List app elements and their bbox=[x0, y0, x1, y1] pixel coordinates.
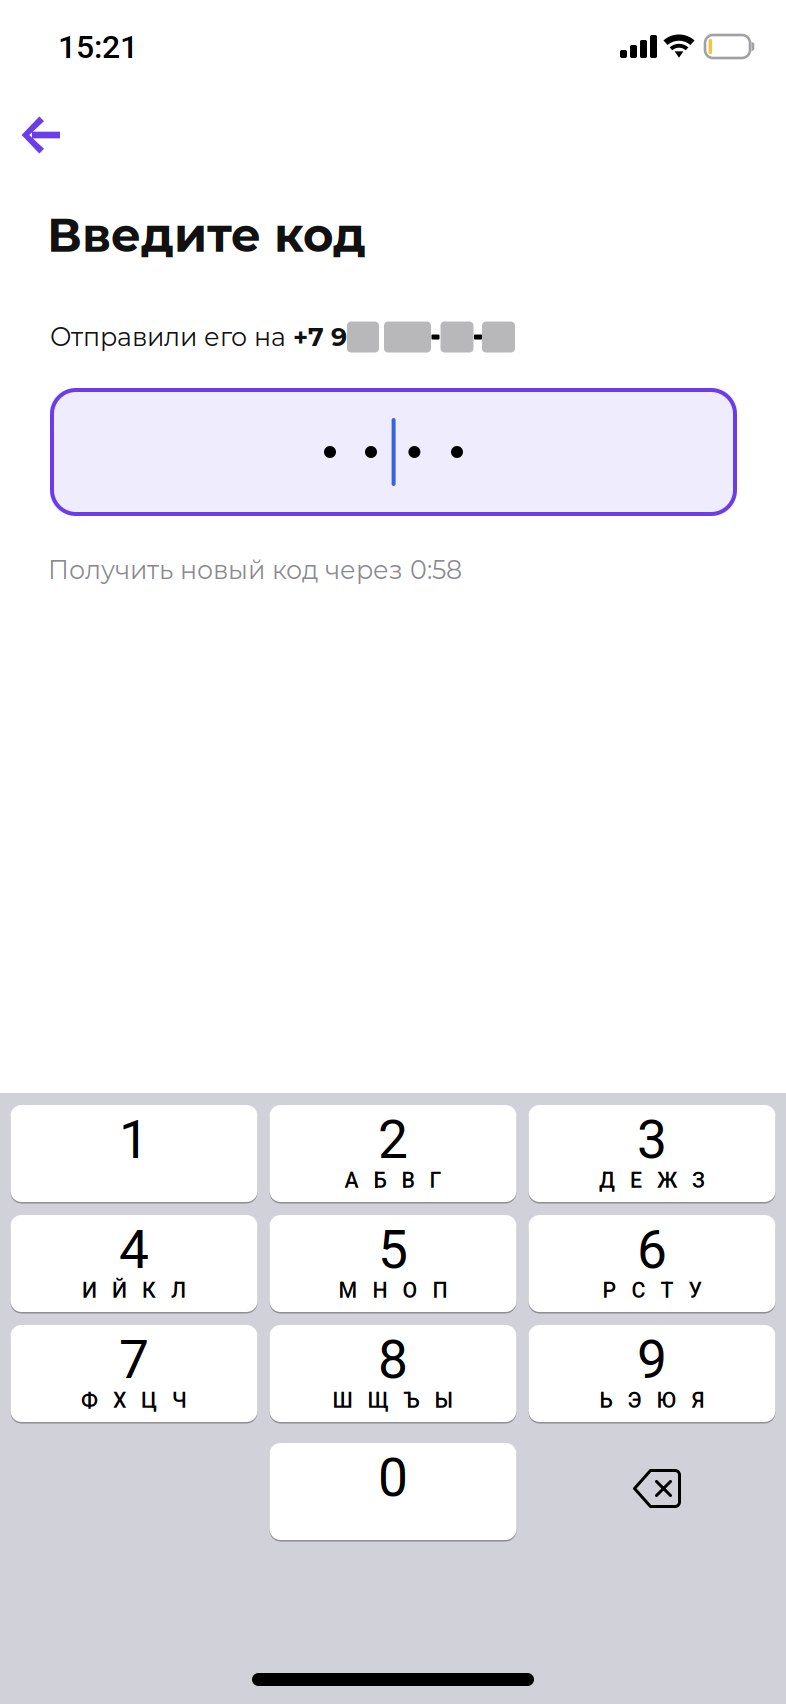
staticText: Ш Щ Ъ Ы bbox=[332, 1388, 453, 1413]
staticText: 2 bbox=[378, 1108, 408, 1171]
button[interactable]: 1 bbox=[10, 1105, 257, 1202]
staticText: +7 9 bbox=[293, 322, 347, 352]
button[interactable]: 2 bbox=[269, 1105, 516, 1202]
staticText: 3 bbox=[637, 1108, 667, 1171]
button[interactable]: Delete bbox=[528, 1443, 775, 1539]
staticText: Р С Т У bbox=[602, 1278, 701, 1303]
button[interactable]: Получить новый код через 0:58 bbox=[48, 550, 648, 590]
staticText: 9 bbox=[637, 1328, 667, 1391]
button[interactable]: Back bbox=[0, 91, 85, 179]
staticText: Ф Х Ц Ч bbox=[81, 1388, 187, 1413]
button[interactable]: 4 bbox=[10, 1215, 257, 1312]
staticText: 8 bbox=[378, 1328, 408, 1391]
staticText: 0 bbox=[378, 1446, 408, 1509]
staticText: Д Е Ж З bbox=[599, 1168, 705, 1193]
button[interactable]: 8 bbox=[269, 1325, 516, 1422]
staticText: 15:21 bbox=[58, 28, 138, 66]
staticText: Введите код bbox=[47, 207, 366, 263]
staticText: Ь Э Ю Я bbox=[599, 1388, 704, 1413]
staticText: 4 bbox=[119, 1218, 149, 1281]
staticText: И Й К Л bbox=[82, 1278, 186, 1303]
button[interactable]: 6 bbox=[528, 1215, 775, 1312]
staticText: 6 bbox=[637, 1218, 667, 1281]
button[interactable]: 5 bbox=[269, 1215, 516, 1312]
button[interactable]: 9 bbox=[528, 1325, 775, 1422]
staticText: А Б В Г bbox=[344, 1168, 441, 1193]
staticText: Получить новый код через 0:58 bbox=[48, 555, 462, 585]
button[interactable]: 7 bbox=[10, 1325, 257, 1422]
staticText: 1 bbox=[119, 1108, 149, 1171]
staticText: 5 bbox=[378, 1218, 408, 1281]
button[interactable]: Verification code bbox=[50, 388, 737, 516]
staticText: М Н О П bbox=[338, 1278, 447, 1303]
button[interactable]: 3 bbox=[528, 1105, 775, 1202]
staticText: 7 bbox=[119, 1328, 149, 1391]
staticText: Отправили его на bbox=[50, 322, 293, 352]
button[interactable]: 0 bbox=[269, 1443, 516, 1540]
